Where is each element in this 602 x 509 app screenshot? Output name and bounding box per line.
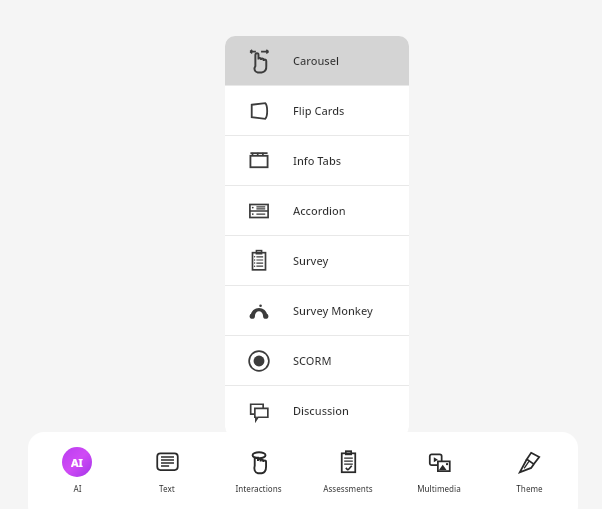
staticText: Assessments — [323, 483, 373, 494]
other: Assessments — [335, 449, 362, 476]
button[interactable]: Theme — [487, 432, 571, 509]
button[interactable]: Accordion — [225, 186, 409, 235]
staticText: Accordion — [293, 203, 346, 218]
staticText: SCORM — [293, 353, 332, 368]
other: Multimedia — [426, 449, 453, 476]
button[interactable]: Assessments — [306, 432, 390, 509]
button[interactable]: Flip Cards — [225, 86, 409, 135]
button[interactable]: SCORM — [225, 336, 409, 385]
button[interactable]: AI — [35, 432, 119, 509]
button[interactable]: Interactions — [216, 432, 300, 509]
staticText: Theme — [516, 483, 543, 494]
button[interactable]: Survey — [225, 236, 409, 285]
button[interactable]: Carousel — [225, 36, 409, 85]
staticText: Flip Cards — [293, 103, 345, 118]
staticText: Survey Monkey — [293, 303, 373, 318]
staticText: Discussion — [293, 403, 349, 418]
button[interactable]: Multimedia — [397, 432, 481, 509]
button[interactable]: Discussion — [225, 386, 409, 435]
staticText: Multimedia — [417, 483, 461, 494]
other: AI — [62, 447, 92, 477]
staticText: Text — [159, 483, 175, 494]
staticText: Info Tabs — [293, 153, 342, 168]
other: Theme — [516, 449, 543, 476]
button[interactable]: Text — [125, 432, 209, 509]
other: Text — [154, 449, 181, 476]
staticText: Carousel — [293, 53, 339, 68]
staticText: Survey — [293, 253, 329, 268]
other: Interactions — [245, 449, 272, 476]
staticText: AI — [73, 483, 82, 494]
staticText: Interactions — [235, 483, 282, 494]
button[interactable]: Info Tabs — [225, 136, 409, 185]
button[interactable]: Survey Monkey — [225, 286, 409, 335]
staticText: AI — [71, 455, 83, 470]
